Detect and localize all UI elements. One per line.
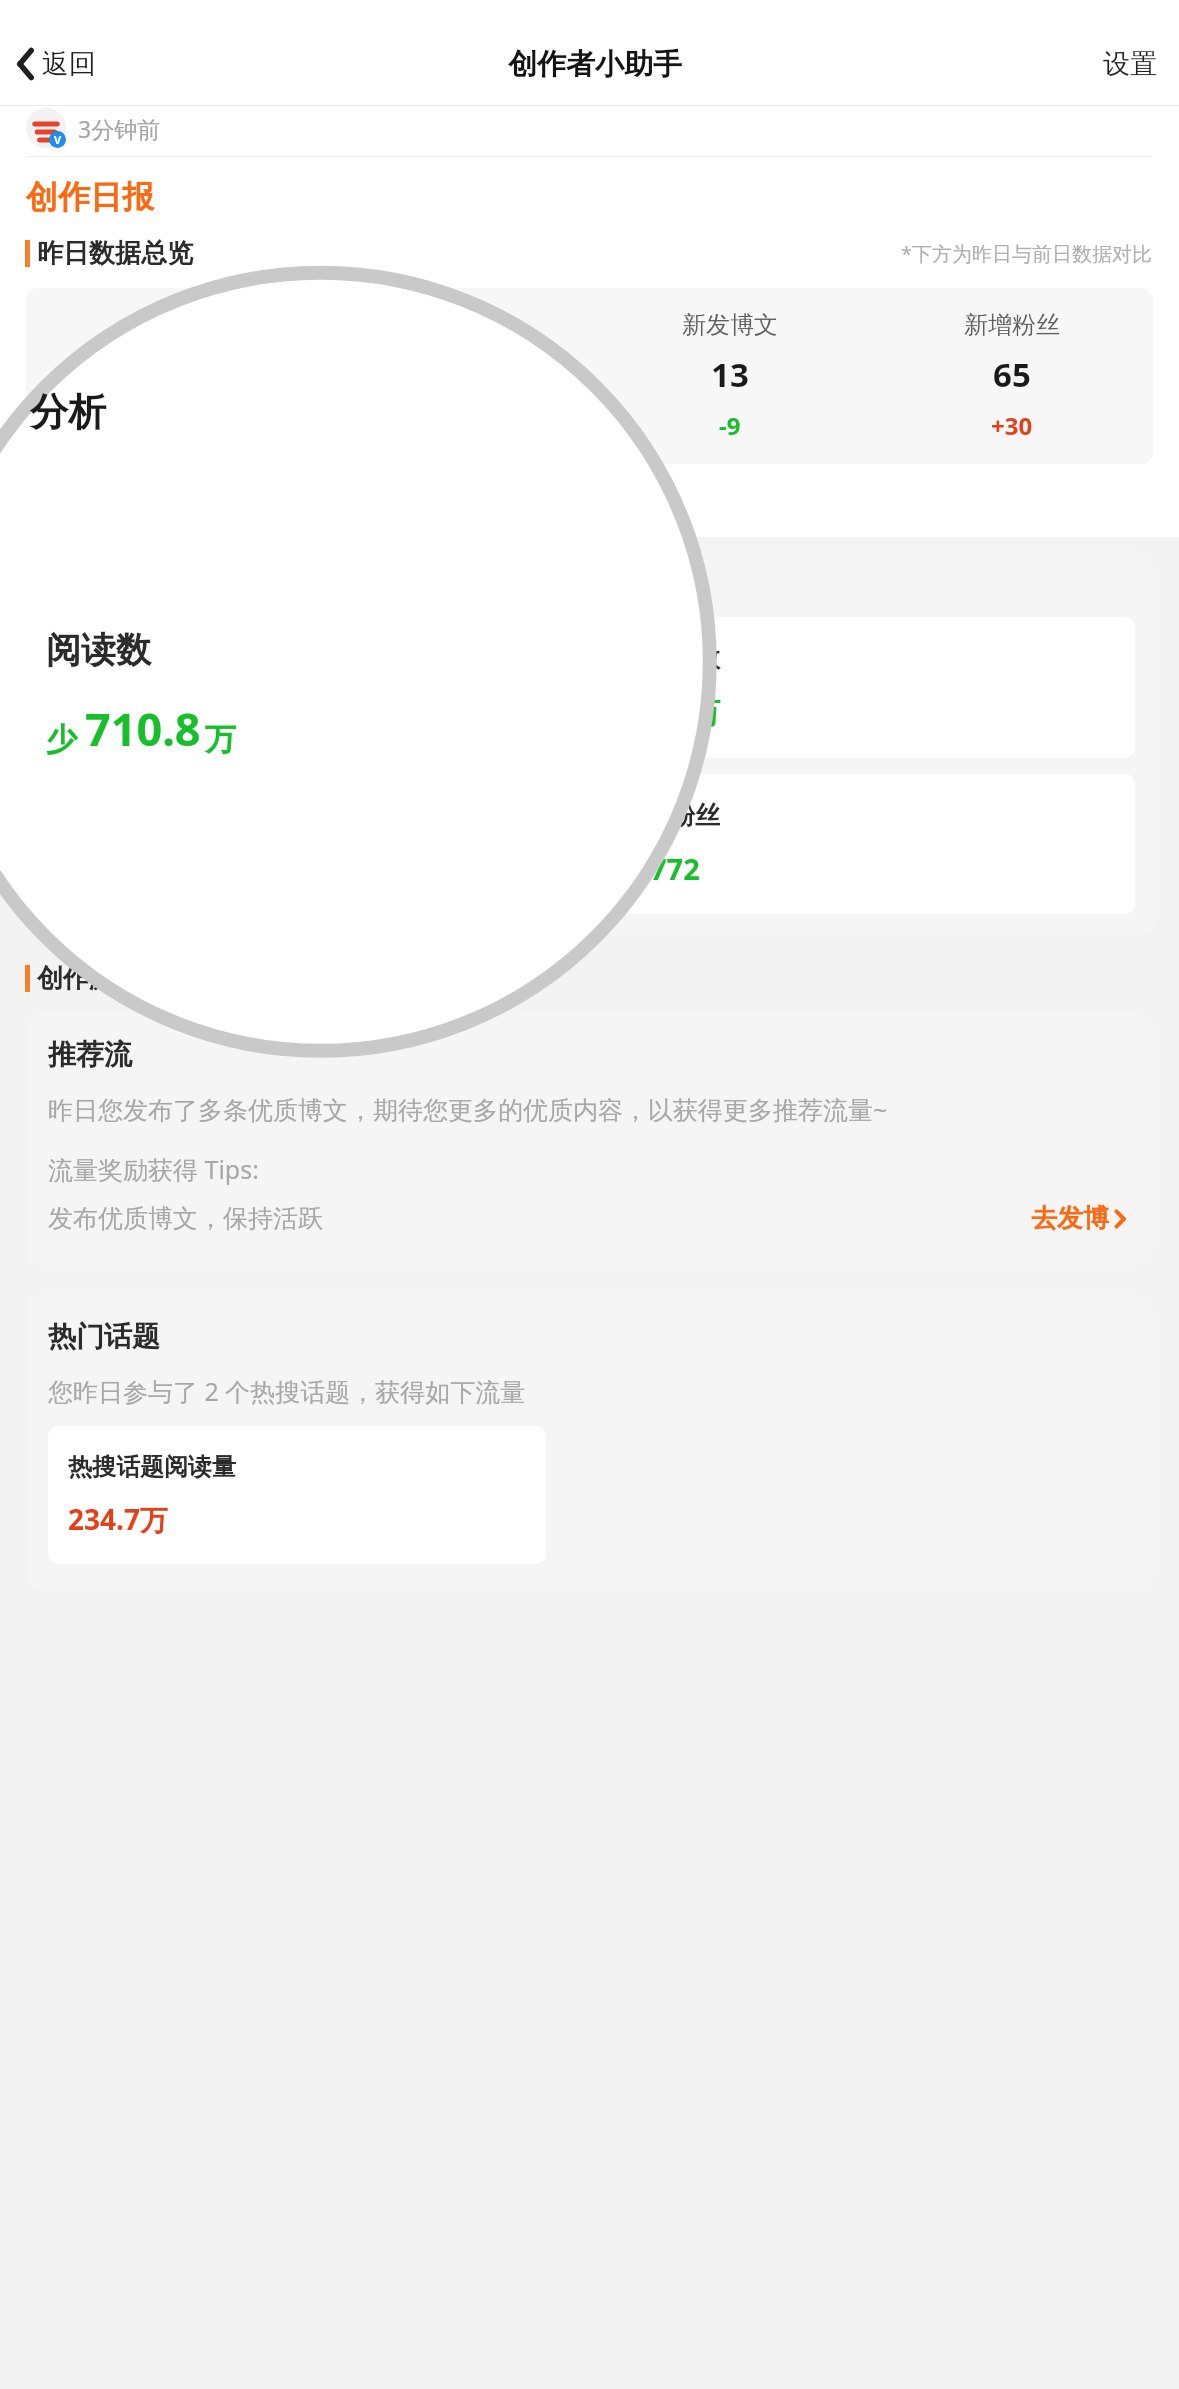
staticText: -9 (719, 409, 741, 442)
button[interactable]: 去发博 (1027, 1196, 1131, 1241)
staticText: 少 (46, 720, 77, 759)
staticText: 昨日您发布了多条优质博文，期待您更多的优质内容，以获得更多推荐流量~ (48, 1092, 888, 1126)
staticText: 热门话题 (48, 1319, 160, 1354)
button[interactable]: Back (0, 39, 110, 89)
staticText: 新增粉丝 (620, 800, 720, 831)
button[interactable]: 热搜话题阅读量 (48, 1426, 546, 1564)
staticText: 13 (711, 352, 749, 397)
button[interactable]: 转评赞数 (598, 617, 1135, 758)
staticText: 772 (650, 849, 700, 888)
other: Back (16, 47, 35, 81)
staticText: 设置 (1103, 47, 1157, 81)
button[interactable]: 阅读数 (26, 310, 307, 441)
button[interactable]: 设置 (1081, 37, 1179, 91)
staticText: 新发博文 (682, 310, 778, 340)
staticText: 创作激励 (37, 962, 141, 995)
staticText: 热搜话题阅读量 (68, 1452, 236, 1482)
staticText: 2.7万 (650, 692, 721, 732)
staticText: 流量奖励获得 Tips: (48, 1152, 259, 1186)
staticText: 少 (66, 702, 90, 732)
staticText: 阅读数 (131, 310, 203, 340)
staticText: 创作者小助手 (508, 46, 682, 83)
staticText: 转评赞 (412, 310, 484, 340)
button[interactable]: 新增粉丝 (871, 310, 1153, 442)
button[interactable]: 转评赞 (307, 310, 589, 442)
staticText: 阅读数 (46, 628, 151, 672)
staticText: *下方为昨日与前日数据对比 (901, 240, 1153, 267)
button[interactable]: 新发博文 (589, 310, 871, 442)
staticText: 发布优质博文，保持活跃 (48, 1203, 323, 1234)
staticText: 转评赞数 (620, 643, 720, 674)
button[interactable]: 阅读数 (44, 617, 580, 758)
staticText: 少 (620, 858, 644, 888)
staticText: 234.7万 (68, 1500, 168, 1538)
staticText: 昨日数据总览 (37, 237, 193, 270)
staticText: 万 (205, 720, 236, 759)
staticText: 去发博 (1031, 1202, 1109, 1235)
staticText: 返回 (42, 47, 96, 81)
staticText: 推荐流 (48, 1037, 132, 1072)
staticText: 分析 (30, 388, 106, 436)
staticText: V (54, 132, 62, 147)
staticText: 新增粉丝 (964, 310, 1060, 340)
staticText: +30 (991, 409, 1033, 442)
staticText: 创作日报 (26, 177, 154, 217)
staticText: 710.8万 (96, 692, 200, 732)
staticText: 65 (993, 352, 1031, 397)
button[interactable]: 新增粉丝 (598, 774, 1135, 914)
staticText: 您昨日参与了 2 个热搜话题，获得如下流量 (48, 1374, 526, 1408)
staticText: 3分钟前 (78, 113, 161, 144)
staticText: 710.8 (85, 698, 201, 759)
staticText: 阅读数 (66, 643, 141, 674)
